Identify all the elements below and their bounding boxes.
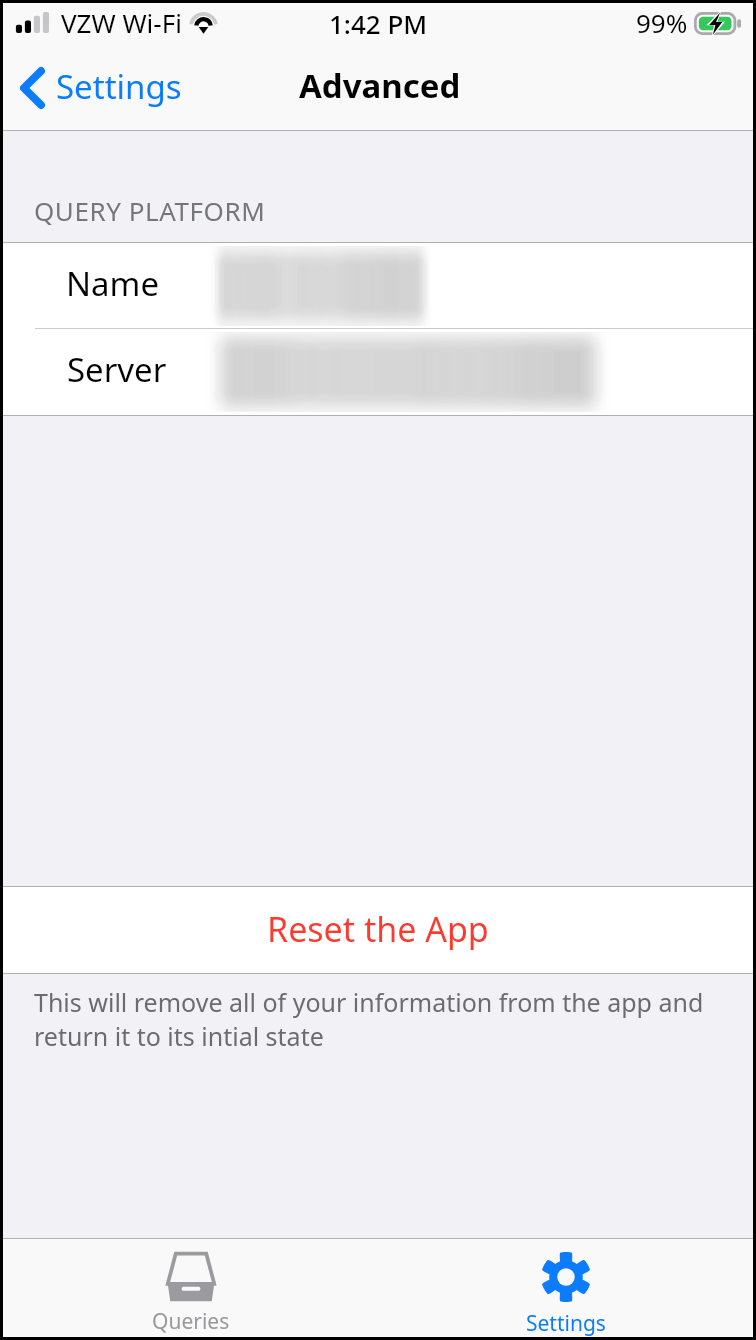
staticText: QUERY PLATFORM — [34, 193, 266, 228]
button[interactable]: Name — [3, 243, 753, 329]
staticText: Name — [66, 261, 160, 306]
staticText: 99% — [636, 5, 688, 40]
button[interactable]: Settings — [378, 1239, 753, 1337]
staticText: Server — [67, 347, 167, 392]
staticText: 1:42 PM — [329, 6, 428, 41]
staticText: VZW Wi-Fi — [61, 5, 182, 40]
button[interactable]: Reset the App — [3, 887, 753, 973]
button[interactable]: Server — [3, 329, 753, 415]
other: Back to Settings — [20, 67, 45, 109]
staticText: Reset the App — [267, 906, 489, 952]
button[interactable]: Back to Settings — [3, 45, 200, 131]
staticText: This will remove all of your information… — [34, 985, 723, 1053]
button[interactable]: Queries — [3, 1239, 378, 1337]
staticText: Settings — [56, 64, 182, 109]
staticText: Advanced — [299, 63, 461, 108]
staticText: Queries — [152, 1307, 230, 1336]
staticText: Settings — [526, 1309, 606, 1337]
